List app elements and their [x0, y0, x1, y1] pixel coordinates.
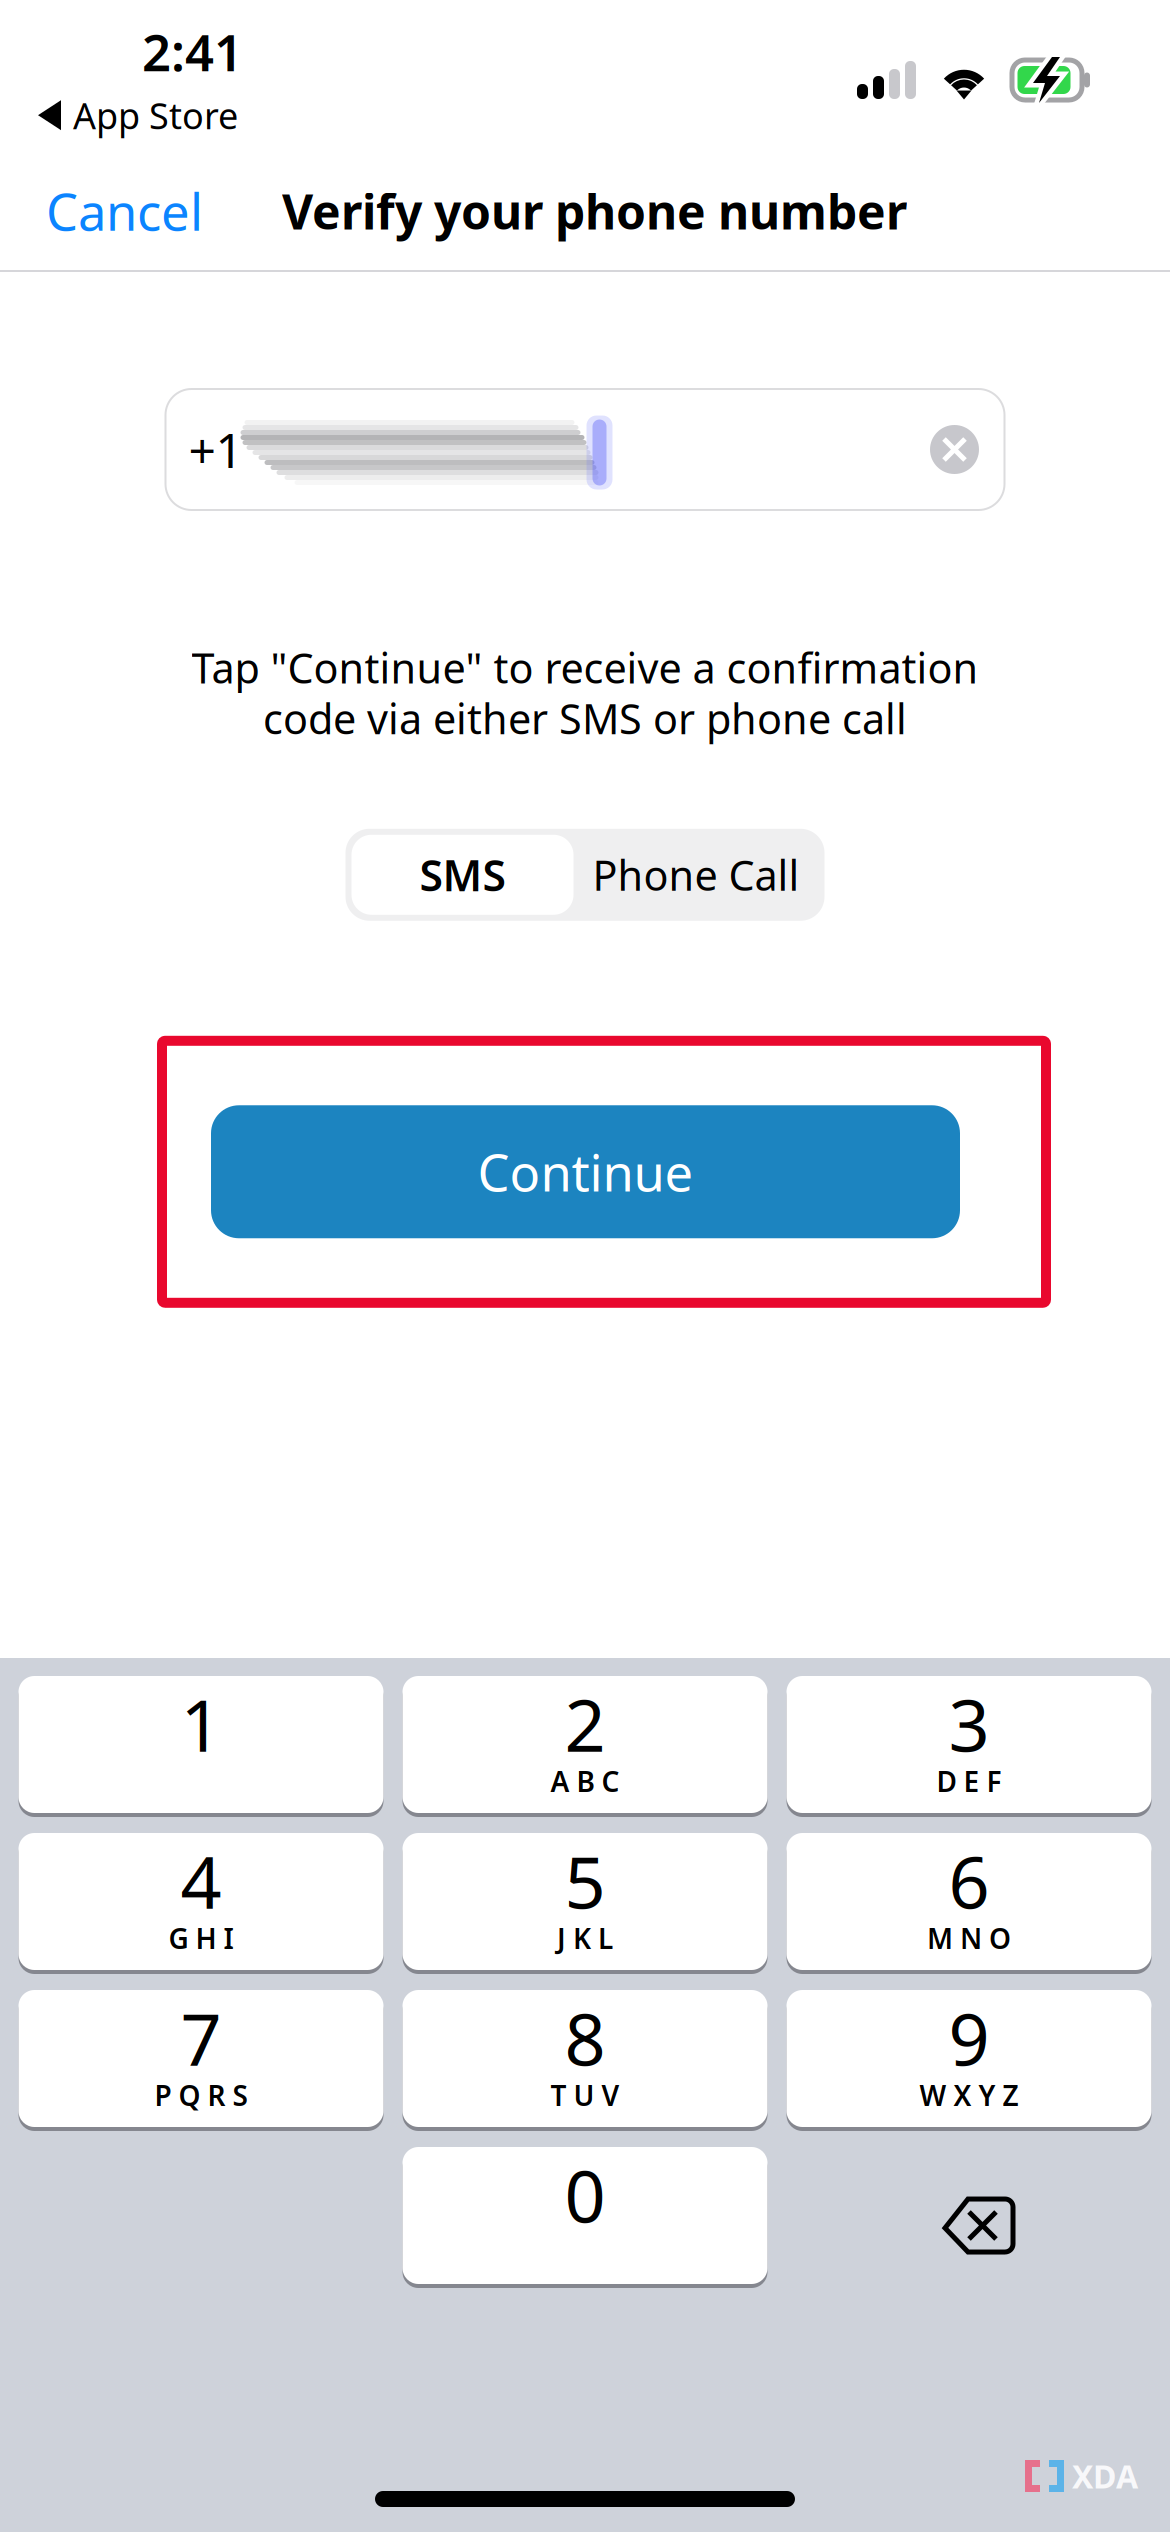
staticText: 8: [564, 1990, 605, 2086]
staticText: App Store: [73, 91, 238, 139]
staticText: Tap "Continue" to receive a confirmation: [191, 640, 978, 695]
staticText: Continue: [477, 1138, 693, 1205]
button[interactable]: 8: [402, 1990, 767, 2131]
staticText: M N O: [927, 1920, 1011, 1957]
button[interactable]: Delete: [786, 2147, 1151, 2288]
staticText: 3: [948, 1676, 989, 1772]
staticText: Phone Call: [592, 847, 799, 902]
staticText: Cancel: [46, 177, 203, 245]
button[interactable]: 2: [402, 1676, 767, 1817]
staticText: 7: [180, 1990, 221, 2086]
button[interactable]: Back to App Store: [0, 87, 262, 143]
button[interactable]: Phone Call: [573, 835, 818, 915]
staticText: 0: [564, 2147, 605, 2243]
staticText: 9: [948, 1990, 989, 2086]
staticText: 2:41: [142, 18, 243, 85]
staticText: code via either SMS or phone call: [263, 691, 907, 746]
button[interactable]: 9: [786, 1990, 1151, 2131]
staticText: A B C: [550, 1763, 619, 1800]
staticText: XDA: [1072, 2455, 1138, 2497]
staticText: SMS: [419, 846, 505, 903]
button[interactable]: 6: [786, 1833, 1151, 1974]
button[interactable]: SMS: [351, 835, 573, 915]
staticText: 4: [180, 1833, 221, 1929]
button[interactable]: 3: [786, 1676, 1151, 1817]
staticText: Verify your phone number: [282, 179, 907, 243]
button[interactable]: Continue: [211, 1105, 960, 1238]
staticText: T U V: [550, 2077, 619, 2114]
staticText: 5: [564, 1833, 605, 1929]
staticText: 6: [948, 1833, 989, 1929]
staticText: 1: [180, 1676, 221, 1772]
button[interactable]: 5: [402, 1833, 767, 1974]
staticText: D E F: [936, 1763, 1001, 1800]
button[interactable]: Cancel: [0, 152, 233, 270]
staticText: G H I: [168, 1920, 233, 1957]
staticText: 2: [564, 1676, 605, 1772]
button[interactable]: 7: [18, 1990, 383, 2131]
staticText: J K L: [557, 1920, 613, 1957]
button[interactable]: 0: [402, 2147, 767, 2288]
staticText: W X Y Z: [919, 2077, 1018, 2114]
button[interactable]: 1: [18, 1676, 383, 1817]
button[interactable]: Clear phone number: [912, 407, 996, 491]
staticText: +1: [188, 418, 242, 481]
staticText: P Q R S: [154, 2077, 247, 2114]
button[interactable]: 4: [18, 1833, 383, 1974]
